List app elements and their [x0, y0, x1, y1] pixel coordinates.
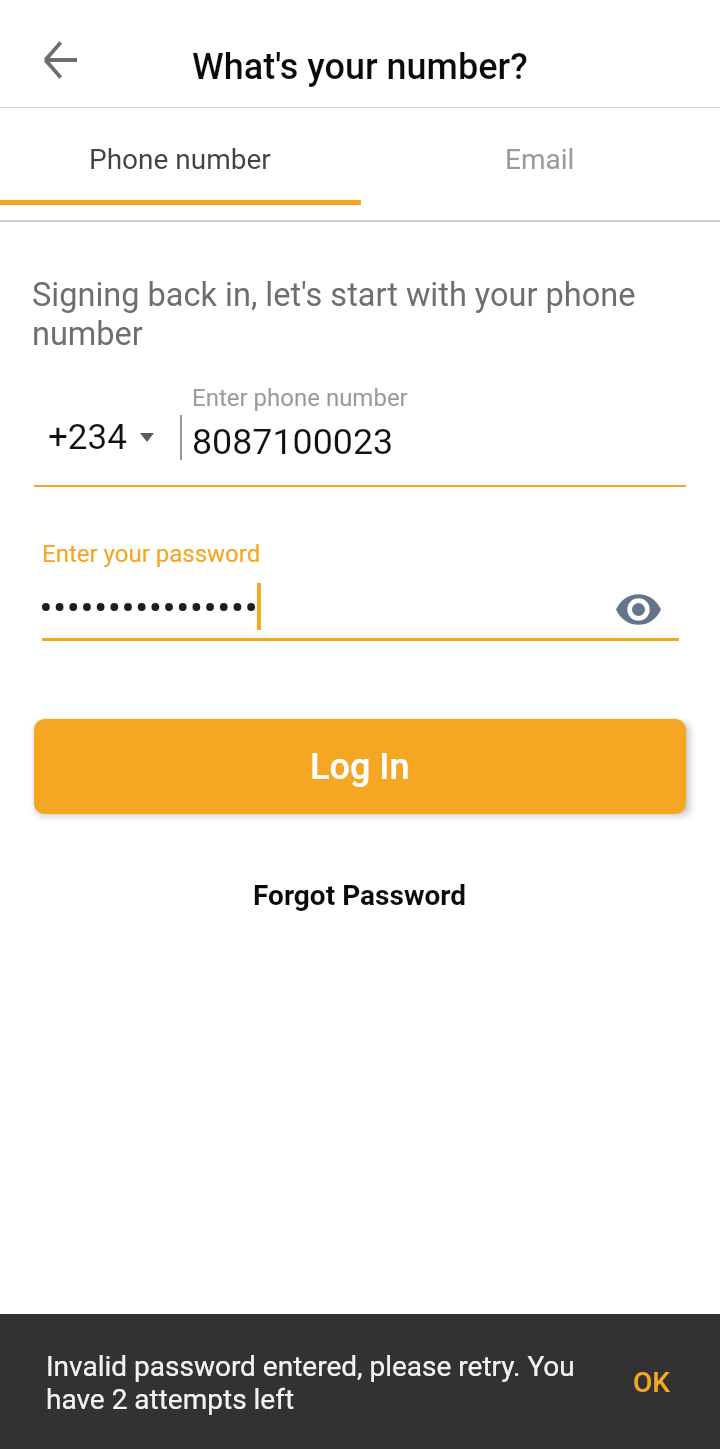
- button[interactable]: Phone number: [0, 113, 360, 205]
- button[interactable]: OK: [613, 1354, 690, 1411]
- button[interactable]: Show password: [610, 581, 666, 637]
- staticText: Enter phone number: [192, 384, 408, 412]
- button[interactable]: Email: [360, 113, 720, 205]
- staticText: Enter your password: [42, 540, 261, 568]
- staticText: 8087100023: [192, 421, 394, 463]
- button[interactable]: Navigate back: [16, 16, 104, 104]
- staticText: Log In: [310, 746, 410, 788]
- button[interactable]: Forgot Password: [233, 869, 487, 922]
- staticText: Signing back in, let's start with your p…: [32, 276, 660, 353]
- staticText: Invalid password entered, please retry. …: [46, 1350, 591, 1416]
- staticText: Phone number: [89, 143, 271, 176]
- button[interactable]: Log In: [34, 719, 686, 814]
- staticText: Forgot Password: [253, 879, 467, 912]
- staticText: OK: [633, 1366, 670, 1399]
- staticText: What's your number?: [192, 46, 528, 88]
- staticText: Email: [505, 143, 575, 176]
- button[interactable]: +234: [48, 412, 154, 462]
- staticText: +234: [48, 417, 127, 458]
